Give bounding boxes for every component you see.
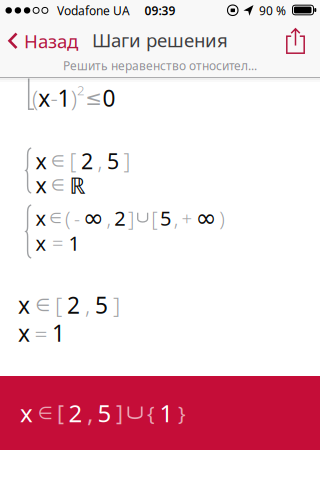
staticText: [ [55,290,62,320]
staticText: [ [57,399,64,427]
staticText: 1 [68,230,79,256]
staticText: x [35,230,46,256]
staticText: 90 % [259,2,286,18]
staticText: } [178,400,186,426]
staticText: Шаги решения [92,28,228,52]
staticText: x [20,397,33,429]
staticText: ( [65,205,71,231]
staticText: 2 [77,81,85,99]
staticText: 1 [52,318,65,348]
staticText: x [18,318,30,348]
staticText: x [35,171,46,199]
staticText: 2 [68,397,82,429]
staticText: + [182,206,193,230]
staticText: ∈ [49,210,62,226]
staticText: , [97,147,102,175]
staticText: 2 [114,205,125,231]
staticText: ℝ [69,170,85,200]
staticText: - [74,206,80,230]
staticText: Vodafone UA [57,2,130,18]
staticText: ∈ [51,152,65,170]
staticText: ] [123,147,130,175]
staticText: { [147,400,155,426]
staticText: ] [116,399,123,427]
staticText: ∈ [35,295,50,315]
staticText: , [87,397,93,429]
staticText: 0 [102,83,115,113]
button[interactable] [286,28,320,54]
staticText: 1 [58,83,71,113]
staticText: , [85,290,90,320]
staticText: [ [69,147,76,175]
staticText: , [174,205,179,231]
staticText: ∞ [195,204,216,232]
button[interactable]: Решить неравенство относител... [63,57,257,73]
staticText: ∈ [51,176,65,194]
staticText: 2 [81,147,93,175]
staticText: , [106,205,111,231]
staticText: ∈ [37,403,52,423]
staticText: ≤ [85,87,102,109]
staticText: x [38,83,50,113]
staticText: - [50,83,57,113]
staticText: 09:39 [144,2,175,18]
staticText: Назад [24,29,78,53]
staticText: ) [219,205,225,231]
staticText: 2 [67,290,80,320]
staticText: 1 [159,397,173,429]
staticText: = [52,230,63,256]
staticText: 5 [160,205,171,231]
staticText: x [35,205,46,231]
staticText: Решить неравенство относител... [63,57,257,73]
staticText: x [18,290,30,320]
staticText: 5 [107,147,119,175]
staticText: [ [151,205,157,231]
staticText: ( [32,83,38,113]
staticText: 5 [95,290,108,320]
staticText: ] [113,290,120,320]
staticText: = [34,318,47,348]
staticText: ∞ [83,204,104,232]
staticText: ) [71,83,77,113]
staticText: ] [128,205,134,231]
button[interactable]: Назад [0,29,78,53]
staticText: x [35,147,46,175]
staticText: 5 [97,397,111,429]
